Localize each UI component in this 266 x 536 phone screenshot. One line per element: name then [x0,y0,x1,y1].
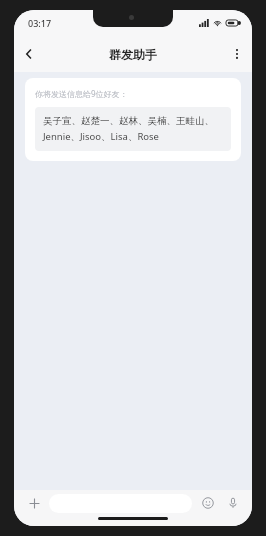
staticText: 群发助手 [109,47,157,62]
button[interactable]: Emoji [197,492,219,514]
button[interactable]: More options [222,39,252,69]
staticText: 吴子宣、赵楚一、赵林、吴楠、王畦山、Jennie、Jisoo、Lisa、Rose [43,115,223,143]
button[interactable]: Add attachment [22,491,46,515]
button[interactable]: Back [14,39,44,69]
staticText: 03:17 [28,17,52,29]
button[interactable]: 你将发送信息给9位好友： [25,78,241,161]
staticText: 你将发送信息给9位好友： [35,88,128,99]
button[interactable]: Voice input [222,492,244,514]
